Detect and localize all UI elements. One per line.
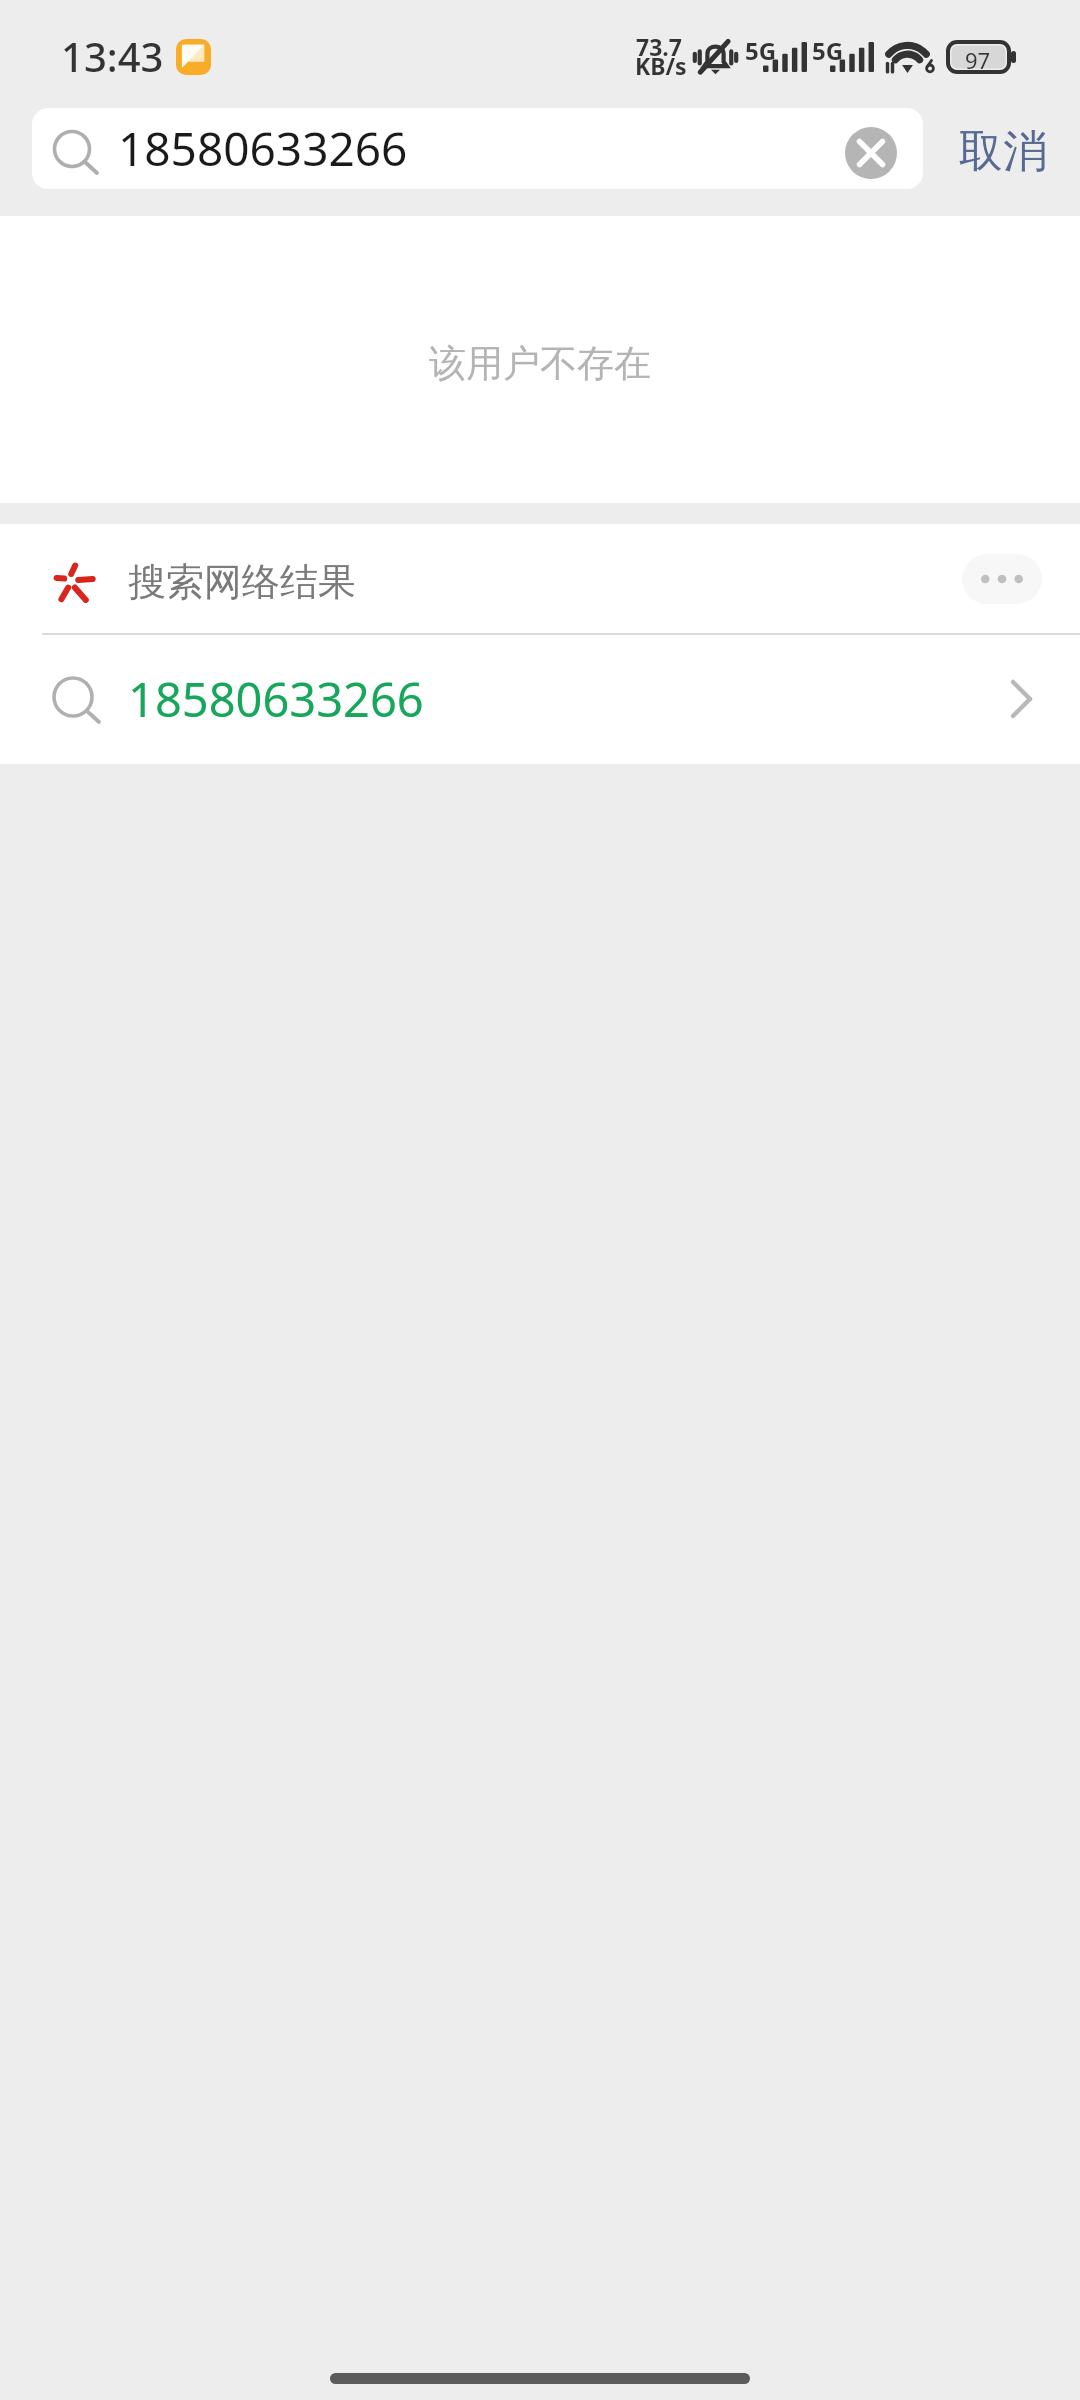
staticText: 73.7 [636, 31, 682, 62]
button[interactable]: 取消 [943, 114, 1063, 189]
staticText: 13:43 [61, 29, 164, 83]
button[interactable]: 搜索网络结果 [0, 524, 1080, 634]
staticText: 该用户不存在 [429, 340, 651, 387]
button[interactable]: Clear text [843, 125, 899, 181]
staticText: 97 [965, 45, 991, 75]
staticText: 取消 [959, 124, 1047, 179]
staticText: 18580633266 [128, 667, 424, 731]
staticText: 5G [745, 34, 777, 67]
staticText: 搜索网络结果 [128, 558, 356, 606]
staticText: 18580633266 [118, 117, 408, 180]
button[interactable]: More options [962, 554, 1042, 604]
button[interactable]: 18580633266 [32, 108, 923, 189]
staticText: 5G [812, 34, 844, 67]
button[interactable]: 18580633266 [0, 635, 1080, 762]
staticText: KB/s [635, 50, 687, 81]
